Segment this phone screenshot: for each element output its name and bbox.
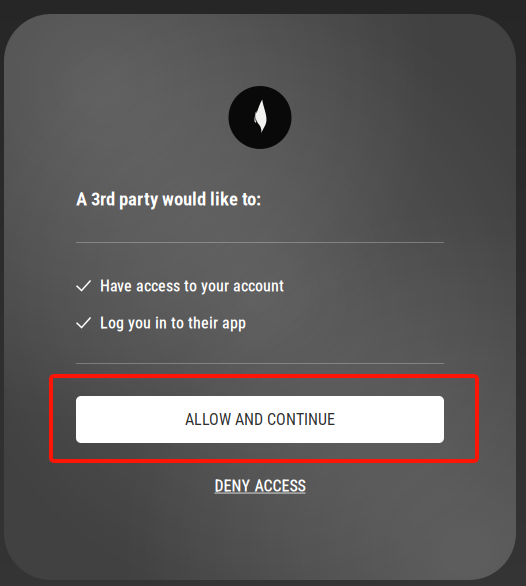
staticText: Have access to your account (100, 277, 284, 295)
staticText: ALLOW AND CONTINUE (185, 410, 335, 429)
button[interactable]: ALLOW AND CONTINUE (76, 396, 444, 443)
staticText: A 3rd party would like to: (76, 188, 261, 210)
staticText: Log you in to their app (100, 314, 246, 332)
staticText: DENY ACCESS (214, 477, 305, 495)
button[interactable]: DENY ACCESS (76, 479, 444, 493)
